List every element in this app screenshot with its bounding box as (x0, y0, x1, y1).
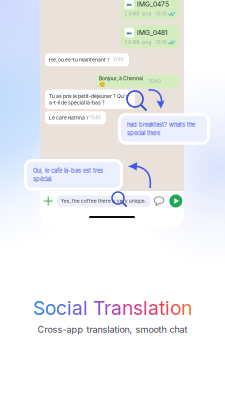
staticText: Yes, the coffee there is very unique. (61, 198, 146, 204)
button[interactable]: Send (167, 194, 184, 207)
staticText: Oui, le café là-bas est très (33, 167, 103, 174)
staticText: 2.6 MB · png (124, 40, 151, 45)
staticText: Bonjour, à Chennai 😊 (99, 75, 143, 87)
staticText: IMG_0475 (137, 0, 169, 8)
staticText: special there (127, 130, 160, 137)
staticText: Hé, où es-tu maintenant ? (49, 57, 110, 63)
staticText: 11:45 (113, 57, 124, 62)
staticText: spécial. (33, 176, 53, 183)
button[interactable]: Translate (151, 193, 167, 209)
staticText: 10:40 (149, 79, 161, 84)
staticText: IMG_0481 (137, 28, 168, 36)
staticText: a-t-il de spécial là-bas ? (49, 99, 105, 106)
staticText: had breakfast? whats the (127, 121, 195, 128)
staticText: Cross-app translation, smooth chat (37, 324, 187, 335)
staticText: Oui, c… (156, 133, 173, 139)
staticText: 10:10 (156, 40, 167, 45)
staticText: 11:45 (90, 115, 101, 120)
staticText: Le café Rathna ? (49, 115, 89, 121)
staticText: 10:10 (156, 11, 167, 16)
button[interactable]: Yes, the coffee there is very unique. (57, 195, 151, 207)
staticText: Tu as pris le petit-déjeuner ? Qu'y (49, 93, 129, 99)
button[interactable]: Attach (40, 193, 57, 209)
staticText: 2.4 MB · png (124, 11, 151, 16)
